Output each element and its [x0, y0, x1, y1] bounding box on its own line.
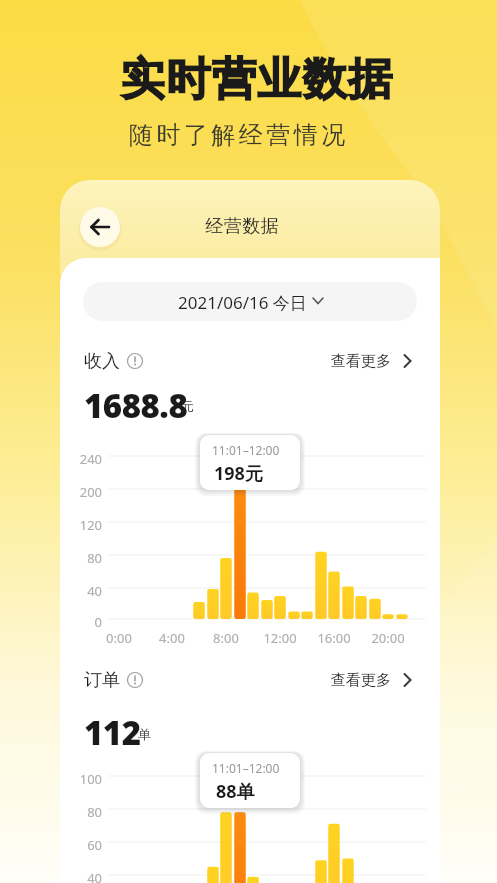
staticText: 40 — [58, 582, 102, 600]
staticText: 订单 — [84, 669, 120, 692]
button[interactable]: 收入说明 — [126, 352, 146, 372]
button[interactable] — [83, 282, 417, 321]
staticText: 88单 — [216, 779, 255, 804]
staticText: 单 — [138, 726, 151, 742]
staticText: 40 — [58, 869, 102, 883]
staticText: 0 — [58, 613, 102, 631]
staticText: 80 — [58, 803, 102, 821]
staticText: 12:00 — [252, 629, 308, 647]
staticText: 实时营业数据 — [120, 52, 393, 107]
staticText: 120 — [58, 516, 102, 534]
button[interactable]: 返回 — [80, 207, 120, 247]
staticText: 11:01–12:00 — [212, 760, 280, 776]
staticText: 100 — [58, 770, 102, 788]
staticText: 80 — [58, 549, 102, 567]
staticText: 198元 — [214, 461, 263, 486]
staticText: 查看更多 — [331, 671, 391, 690]
staticText: 2021/06/16 今日 — [178, 291, 307, 314]
staticText: 1688.8 — [84, 383, 188, 428]
staticText: 11:01–12:00 — [212, 442, 280, 458]
staticText: 200 — [58, 483, 102, 501]
button[interactable] — [325, 348, 420, 376]
button[interactable] — [325, 667, 420, 695]
staticText: 8:00 — [198, 629, 254, 647]
staticText: 240 — [58, 450, 102, 468]
staticText: 20:00 — [360, 629, 416, 647]
staticText: 查看更多 — [331, 352, 391, 371]
staticText: 经营数据 — [205, 215, 279, 238]
staticText: 4:00 — [144, 629, 200, 647]
staticText: 收入 — [84, 350, 120, 373]
staticText: 16:00 — [306, 629, 362, 647]
staticText: 随时了解经营情况 — [127, 120, 347, 150]
staticText: 0:00 — [91, 629, 147, 647]
button[interactable]: 订单说明 — [126, 671, 146, 691]
staticText: 60 — [58, 836, 102, 854]
staticText: 112 — [84, 710, 141, 755]
staticText: 元 — [181, 398, 194, 414]
